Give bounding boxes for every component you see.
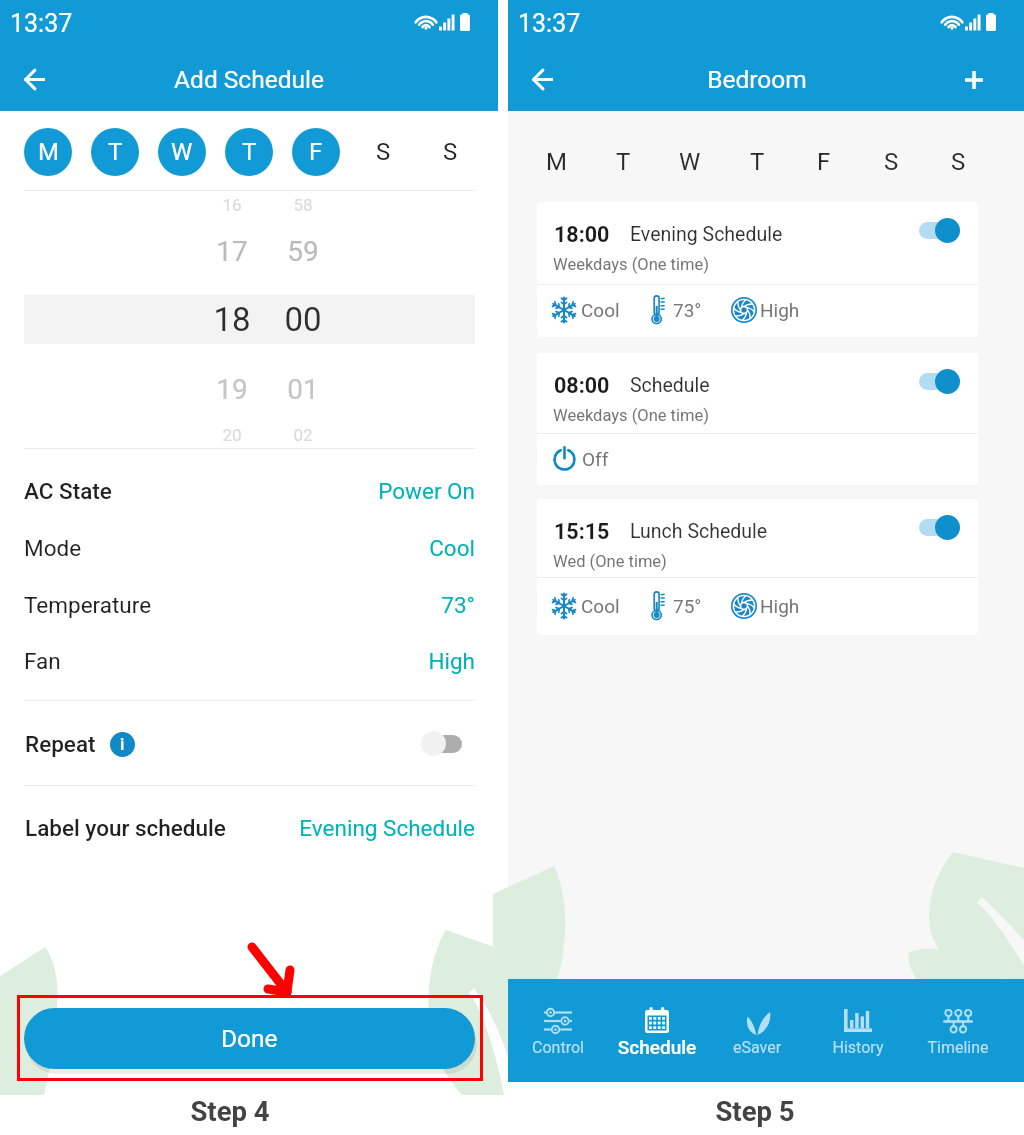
staticText: T: [108, 138, 123, 166]
staticText: S: [376, 138, 391, 166]
staticText: Wed (One time): [553, 552, 667, 571]
staticText: Temperature: [24, 592, 152, 618]
staticText: 58: [258, 195, 348, 215]
button[interactable]: Done: [24, 1008, 475, 1069]
button[interactable]: 18:00: [537, 202, 978, 337]
button[interactable]: M: [532, 138, 580, 186]
button[interactable]: Add schedule: [954, 60, 994, 100]
staticText: 73°: [673, 299, 702, 321]
button[interactable]: S: [867, 138, 915, 186]
staticText: 20: [187, 425, 277, 445]
staticText: T: [750, 148, 765, 176]
button[interactable]: Back: [14, 59, 54, 99]
staticText: 18:00: [554, 222, 610, 247]
staticText: Step 5: [605, 1095, 905, 1127]
staticText: Cool: [581, 595, 620, 617]
staticText: High: [275, 648, 475, 674]
staticText: T: [616, 148, 631, 176]
staticText: Done: [221, 1024, 278, 1053]
staticText: Add Schedule: [49, 65, 449, 94]
button[interactable]: Temperature: [0, 577, 498, 633]
staticText: 59: [258, 235, 348, 268]
staticText: F: [309, 138, 323, 166]
button[interactable]: eSaver: [707, 979, 807, 1082]
button[interactable]: AC State: [0, 463, 498, 519]
staticText: High: [760, 595, 800, 617]
button[interactable]: Repeat toggle: [421, 731, 466, 757]
button[interactable]: M: [24, 128, 72, 176]
staticText: Weekdays (One time): [553, 406, 709, 425]
staticText: W: [679, 148, 701, 176]
staticText: Bedroom: [557, 65, 957, 94]
button[interactable]: Schedule: [607, 979, 707, 1082]
staticText: 16: [187, 195, 277, 215]
staticText: eSaver: [707, 1038, 807, 1057]
button[interactable]: T: [733, 138, 781, 186]
staticText: 02: [258, 425, 348, 445]
staticText: Evening Schedule: [195, 815, 475, 841]
staticText: W: [171, 138, 193, 166]
button[interactable]: Fan: [0, 633, 498, 689]
button[interactable]: History: [808, 979, 908, 1082]
staticText: Off: [582, 448, 609, 470]
staticText: Fan: [24, 648, 61, 674]
staticText: T: [242, 138, 257, 166]
button[interactable]: Toggle schedule: [911, 214, 967, 246]
staticText: F: [817, 148, 831, 176]
button[interactable]: Repeat: [0, 702, 498, 785]
staticText: i: [120, 735, 125, 754]
staticText: Repeat: [25, 731, 96, 757]
button[interactable]: F: [292, 128, 340, 176]
staticText: High: [760, 299, 800, 321]
button[interactable]: W: [158, 128, 206, 176]
button[interactable]: W: [666, 138, 714, 186]
button[interactable]: Label your schedule: [0, 787, 498, 867]
staticText: M: [38, 138, 59, 166]
button[interactable]: Control: [508, 979, 608, 1082]
staticText: S: [951, 148, 966, 176]
staticText: 08:00: [554, 373, 610, 398]
button[interactable]: Toggle schedule: [911, 511, 967, 543]
staticText: Schedule: [607, 1036, 707, 1058]
staticText: 13:37: [10, 9, 130, 38]
staticText: 00: [258, 300, 348, 339]
staticText: Cool: [581, 299, 620, 321]
button[interactable]: Back: [522, 59, 562, 99]
staticText: Schedule: [630, 374, 710, 397]
staticText: Weekdays (One time): [553, 255, 709, 274]
staticText: 75°: [673, 595, 702, 617]
button[interactable]: 15:15: [537, 499, 978, 635]
staticText: Lunch Schedule: [630, 520, 768, 543]
staticText: 13:37: [518, 9, 638, 38]
button[interactable]: T: [91, 128, 139, 176]
button[interactable]: S: [934, 138, 982, 186]
staticText: Control: [508, 1038, 608, 1057]
button[interactable]: S: [426, 128, 474, 176]
staticText: Power On: [275, 478, 475, 504]
button[interactable]: Repeat info: [110, 732, 135, 757]
staticText: 15:15: [554, 519, 610, 544]
button[interactable]: Toggle schedule: [911, 365, 967, 397]
button[interactable]: Timeline: [908, 979, 1008, 1082]
staticText: 73°: [275, 592, 475, 618]
staticText: History: [808, 1038, 908, 1057]
staticText: Step 4: [80, 1095, 380, 1127]
staticText: 19: [187, 373, 277, 406]
button[interactable]: 08:00: [537, 353, 978, 485]
button[interactable]: T: [225, 128, 273, 176]
staticText: Evening Schedule: [630, 223, 783, 246]
button[interactable]: F: [800, 138, 848, 186]
staticText: Mode: [24, 535, 82, 561]
staticText: AC State: [24, 478, 112, 504]
staticText: 17: [187, 235, 277, 268]
staticText: M: [546, 148, 567, 176]
staticText: 01: [258, 373, 348, 406]
button[interactable]: Mode: [0, 520, 498, 576]
staticText: 18: [187, 300, 277, 339]
button[interactable]: T: [599, 138, 647, 186]
staticText: Timeline: [908, 1038, 1008, 1057]
button[interactable]: S: [359, 128, 407, 176]
staticText: S: [443, 138, 458, 166]
staticText: S: [884, 148, 899, 176]
staticText: Label your schedule: [25, 815, 226, 841]
